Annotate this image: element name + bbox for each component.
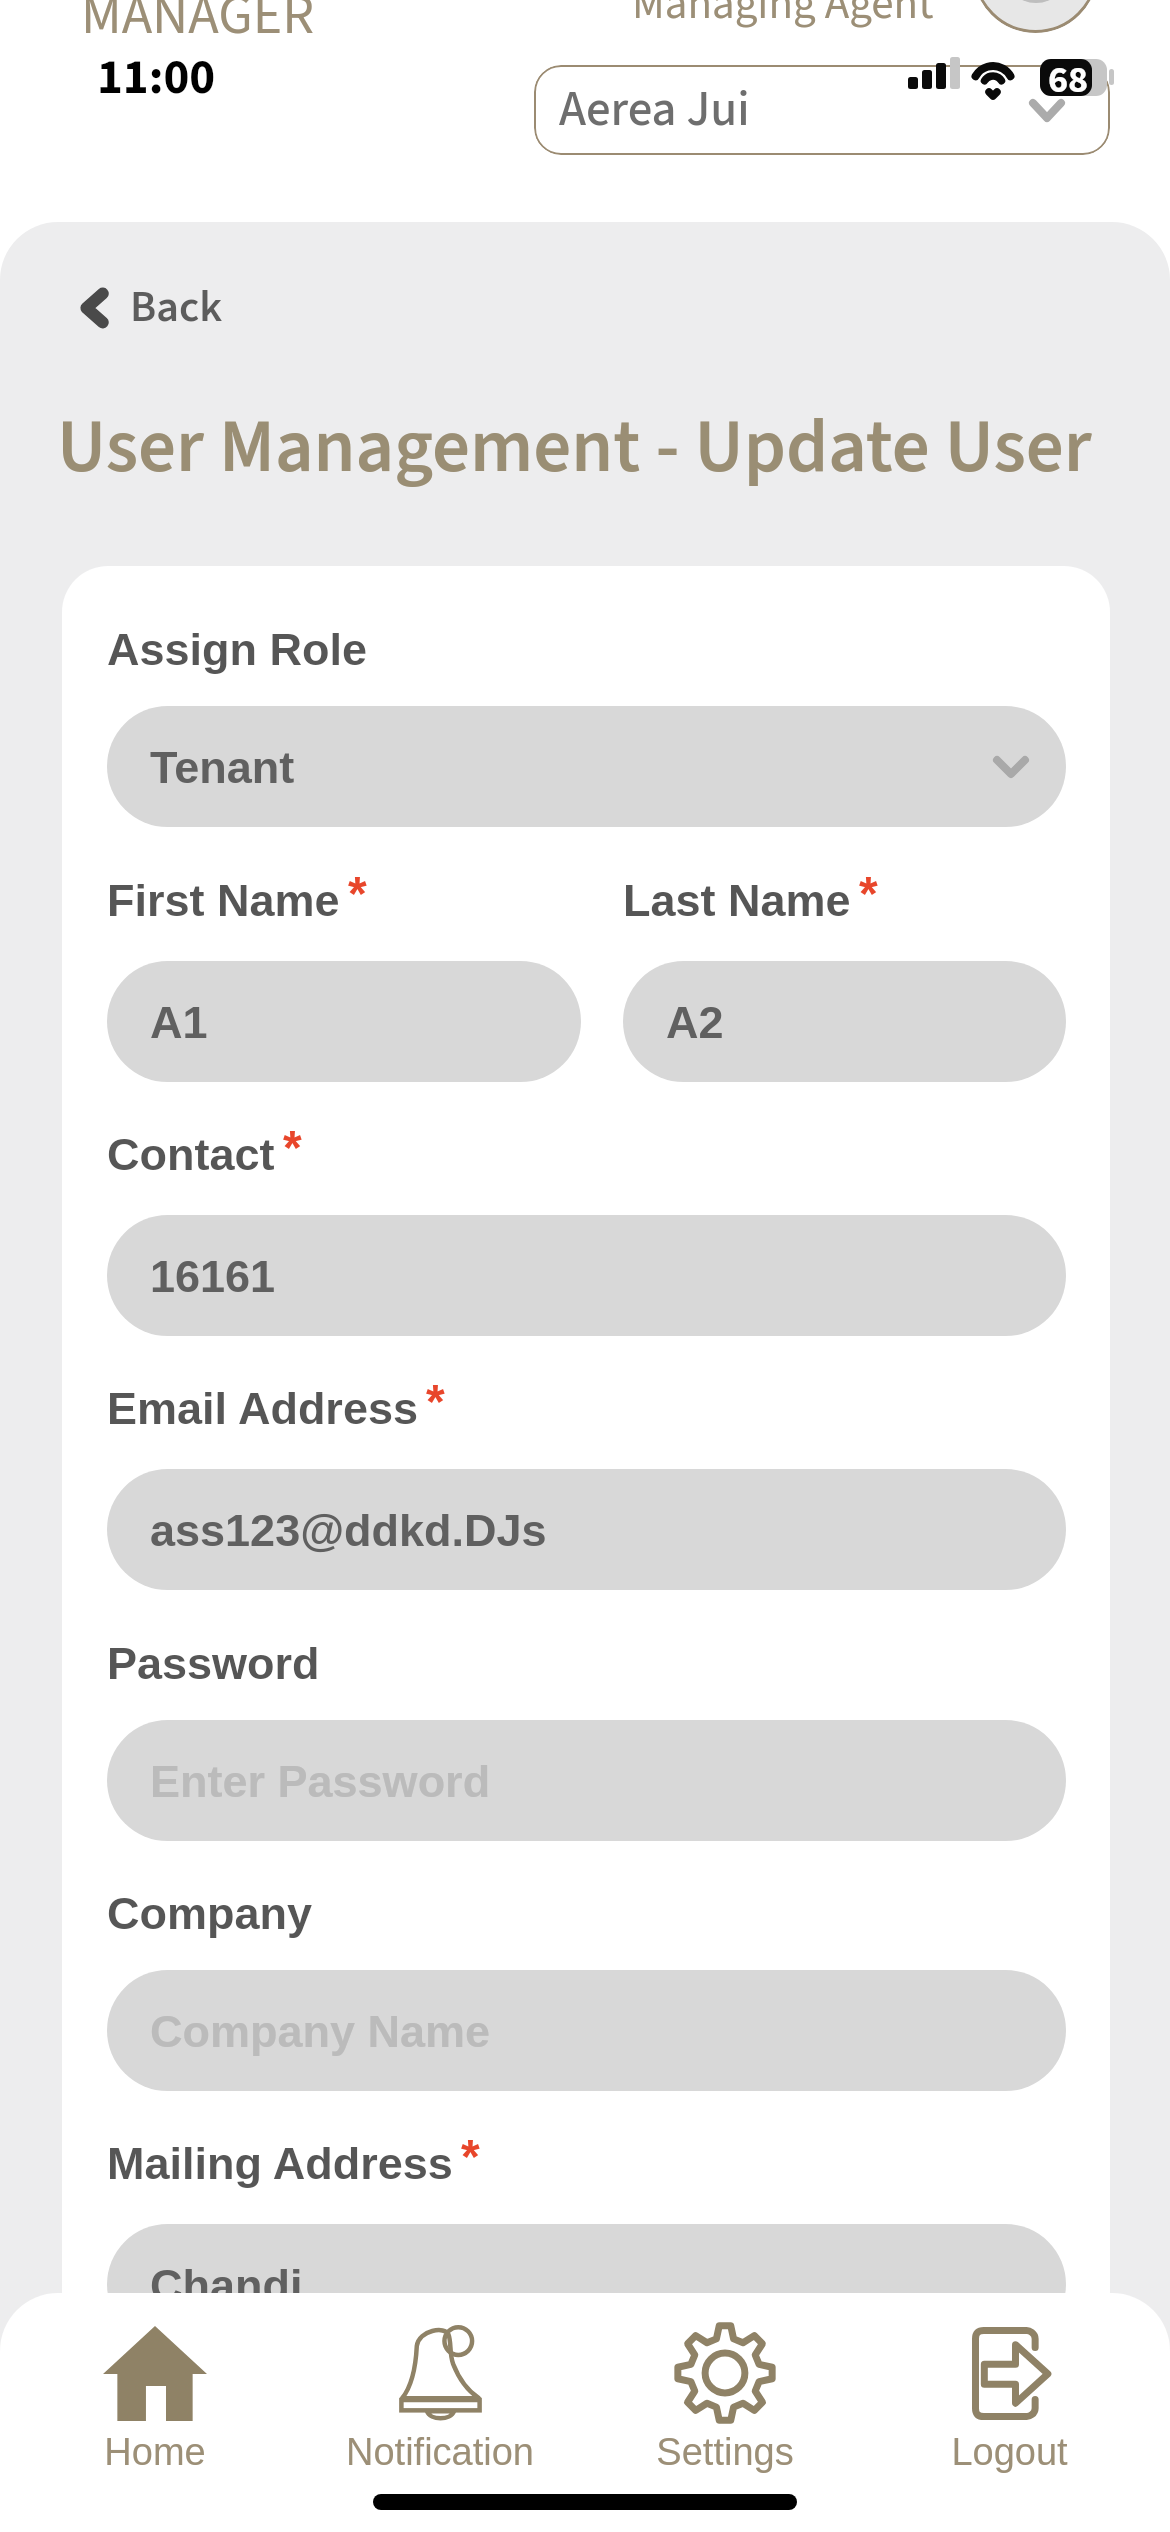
button[interactable]: Home	[12, 2293, 297, 2473]
staticText: Aerea Jui	[559, 75, 750, 145]
button[interactable]: 16161	[107, 1215, 1066, 1336]
staticText: *	[348, 867, 367, 921]
button[interactable]: A1	[107, 961, 581, 1082]
staticText: Home	[104, 2431, 206, 2473]
staticText: A1	[150, 997, 208, 1047]
staticText: First Name	[107, 875, 340, 925]
button[interactable]: Aerea Jui	[534, 65, 1110, 155]
staticText: A2	[666, 997, 724, 1047]
staticText: *	[461, 2130, 480, 2184]
staticText: Notification	[346, 2431, 534, 2473]
button[interactable]: Tenant	[107, 706, 1066, 827]
staticText: *	[426, 1375, 445, 1429]
button[interactable]: Back	[74, 270, 237, 345]
button[interactable]: Settings	[582, 2293, 867, 2473]
staticText: Last Name	[623, 875, 851, 925]
staticText: 11:00	[97, 43, 216, 113]
staticText: Contact	[107, 1129, 275, 1179]
button[interactable]: Profile	[973, 0, 1098, 33]
button[interactable]: Enter Password	[107, 1720, 1066, 1841]
button[interactable]: ass123@ddkd.DJs	[107, 1469, 1066, 1590]
button[interactable]: A2	[623, 961, 1066, 1082]
staticText: Tenant	[150, 742, 295, 792]
staticText: ass123@ddkd.DJs	[150, 1505, 547, 1555]
staticText: Email Address	[107, 1383, 418, 1433]
button[interactable]: Logout	[867, 2293, 1152, 2473]
staticText: *	[859, 867, 878, 921]
staticText: Back	[130, 276, 223, 339]
staticText: *	[283, 1121, 302, 1175]
staticText: MANAGER	[81, 0, 315, 56]
staticText: Company	[107, 1888, 313, 1938]
staticText: Mailing Address	[107, 2138, 453, 2188]
staticText: Chandi	[150, 2260, 303, 2310]
button[interactable]: Company Name	[107, 1970, 1066, 2091]
staticText: Company Name	[150, 2006, 491, 2056]
button[interactable]: Chandi	[107, 2224, 1066, 2345]
staticText: Password	[107, 1638, 320, 1688]
staticText: User Management - Update User	[57, 394, 1092, 501]
staticText: Managing Agent	[632, 0, 934, 36]
button[interactable]: Notification	[297, 2293, 582, 2473]
staticText: Enter Password	[150, 1756, 491, 1806]
staticText: 16161	[150, 1251, 276, 1301]
staticText: Settings	[656, 2431, 794, 2473]
staticText: Assign Role	[107, 624, 368, 674]
staticText: 68	[1048, 53, 1089, 107]
staticText: Logout	[951, 2431, 1068, 2473]
